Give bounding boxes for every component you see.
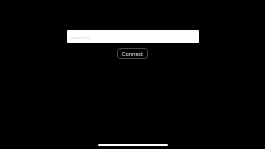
button[interactable]: Connect <box>117 48 148 59</box>
other: Home <box>98 144 168 146</box>
staticText: server key <box>70 34 91 40</box>
button[interactable]: server key <box>67 30 199 43</box>
staticText: Connect <box>122 50 143 57</box>
